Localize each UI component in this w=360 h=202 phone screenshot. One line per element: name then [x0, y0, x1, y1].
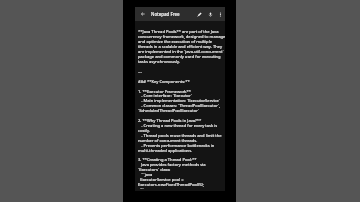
staticText: tasks asynchronously.: [138, 59, 180, 65]
staticText: number of concurrent threads.: [138, 138, 198, 144]
staticText: - Creating a new thread for every task i…: [138, 123, 218, 129]
button[interactable]: Voice input: [205, 7, 216, 21]
staticText: are implemented in the `java.util.concur…: [138, 49, 224, 55]
staticText: - Thread pools reuse threads and limit t…: [138, 133, 222, 139]
staticText: concurrency framework, designed to manag…: [138, 34, 225, 40]
staticText: `Executors` class:: [138, 167, 171, 173]
staticText: costly.: [138, 128, 150, 134]
staticText: Executors.newFixedThreadPool(5);: [138, 182, 204, 188]
staticText: threads in a scalable and efficient way.…: [138, 44, 223, 50]
staticText: - Common classes: `ThreadPoolExecutor`,: [138, 103, 221, 109]
staticText: 2. **Why Thread Pools in Java?**: [138, 118, 202, 124]
staticText: Java provides factory methods via: [138, 162, 206, 168]
staticText: ```: [138, 187, 144, 191]
staticText: Notepad Free: [151, 11, 180, 17]
staticText: `ScheduledThreadPoolExecutor`: [138, 108, 200, 114]
staticText: ```java: [138, 172, 153, 178]
button[interactable]: Back: [136, 7, 149, 21]
staticText: - Core interface: `Executor`: [138, 93, 192, 99]
staticText: ---: [138, 69, 142, 75]
staticText: multi-threaded applications.: [138, 148, 193, 154]
staticText: **Java Thread Pools** are part of the Ja…: [138, 29, 219, 35]
staticText: - Prevents performance bottlenecks in: [138, 143, 215, 149]
staticText: 1. **Executor Framework**: [138, 89, 192, 95]
staticText: - Main implementation: `ExecutorService`: [138, 98, 220, 104]
button[interactable]: Edit: [194, 7, 205, 21]
staticText: ExecutorService pool =: [138, 177, 184, 183]
button[interactable]: More options: [215, 7, 225, 21]
staticText: 3. **Creating a Thread Pool:**: [138, 157, 197, 163]
staticText: and optimize the execution of multiple: [138, 39, 212, 45]
staticText: ### **Key Components:**: [138, 79, 190, 85]
staticText: package and commonly used for executing: [138, 54, 221, 60]
